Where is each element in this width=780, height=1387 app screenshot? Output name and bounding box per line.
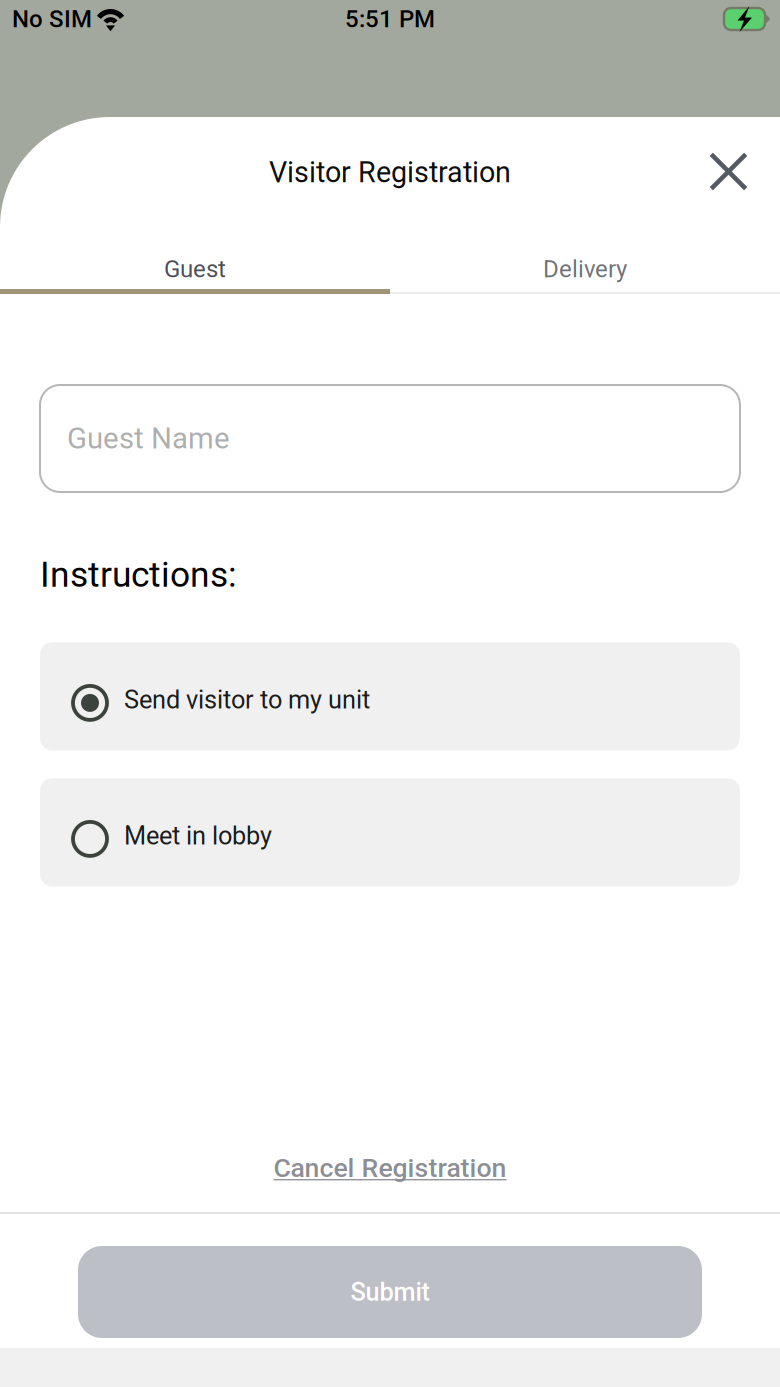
button[interactable]: Guest: [0, 236, 390, 292]
button[interactable]: Meet in lobby: [40, 778, 740, 886]
staticText: Submit: [350, 1277, 429, 1307]
staticText: Visitor Registration: [269, 156, 511, 189]
button[interactable]: Cancel Registration: [0, 1144, 780, 1212]
button[interactable]: Delivery: [390, 236, 780, 292]
staticText: Cancel Registration: [273, 1152, 506, 1184]
staticText: Send visitor to my unit: [124, 685, 370, 715]
button[interactable]: Submit: [78, 1246, 702, 1338]
staticText: Meet in lobby: [124, 821, 272, 851]
button[interactable]: Send visitor to my unit: [40, 642, 740, 750]
staticText: No SIM: [12, 5, 92, 33]
staticText: 5:51 PM: [345, 5, 435, 33]
staticText: Guest: [164, 255, 226, 283]
staticText: Instructions:: [40, 554, 237, 595]
button[interactable]: Close: [709, 152, 780, 201]
staticText: Delivery: [543, 255, 627, 283]
staticText: Guest Name: [67, 421, 230, 456]
